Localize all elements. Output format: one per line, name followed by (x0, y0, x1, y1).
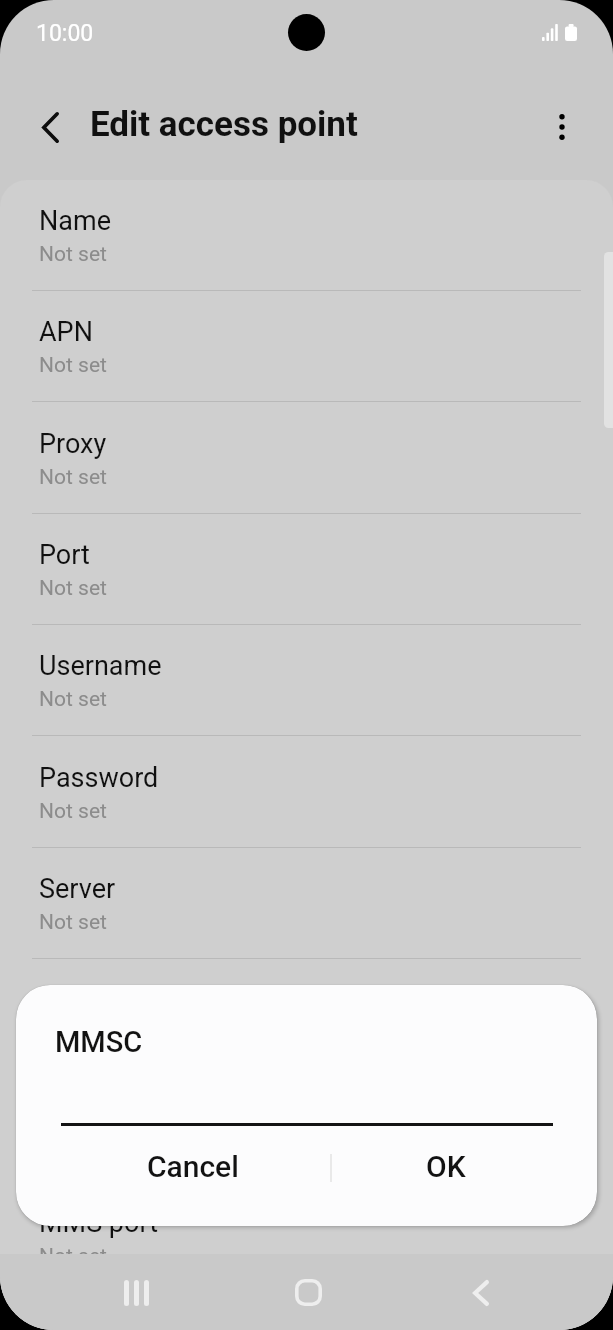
staticText: Edit access point (90, 104, 358, 145)
button[interactable]: Port (0, 514, 613, 625)
staticText: APN (39, 316, 93, 348)
staticText: Cancel (147, 1149, 239, 1184)
staticText: Not set (39, 576, 107, 601)
staticText: Not set (39, 465, 107, 490)
button[interactable]: Password (0, 737, 613, 848)
staticText: 10:00 (36, 20, 94, 47)
staticText: Password (39, 762, 159, 794)
staticText: Server (39, 873, 116, 905)
staticText: Username (39, 650, 162, 682)
staticText: Not set (39, 1021, 107, 1046)
button[interactable]: OK (346, 1137, 545, 1195)
staticText: Not set (39, 353, 107, 378)
button[interactable]: Proxy (0, 403, 613, 514)
staticText: Name (39, 205, 111, 237)
staticText: OK (426, 1149, 466, 1184)
staticText: MMSC (39, 984, 120, 1016)
staticText: Port (39, 539, 90, 571)
button[interactable]: Server (0, 848, 613, 959)
button[interactable]: Name (0, 180, 613, 291)
button[interactable]: APN (0, 291, 613, 402)
button[interactable]: Recent apps (108, 1264, 165, 1321)
button[interactable]: Cancel (45, 1137, 341, 1195)
staticText: MMSC (55, 1025, 143, 1059)
button[interactable]: MMSC (0, 959, 613, 1070)
button[interactable]: MMS proxy (0, 1071, 613, 1182)
staticText: Not set (39, 687, 107, 712)
button[interactable]: Navigate up (22, 99, 78, 155)
staticText: Not set (39, 242, 107, 267)
button[interactable]: MMS port (0, 1182, 613, 1293)
button[interactable]: More options (534, 99, 590, 155)
staticText: MMS proxy (39, 1096, 175, 1128)
staticText: Not set (39, 910, 107, 935)
staticText: Not set (39, 1244, 107, 1269)
button[interactable]: Home (280, 1264, 337, 1321)
button[interactable]: Back (452, 1264, 509, 1321)
staticText: Not set (39, 799, 107, 824)
staticText: MMS port (39, 1207, 159, 1239)
staticText: Proxy (39, 428, 107, 460)
button[interactable]: Username (0, 625, 613, 736)
